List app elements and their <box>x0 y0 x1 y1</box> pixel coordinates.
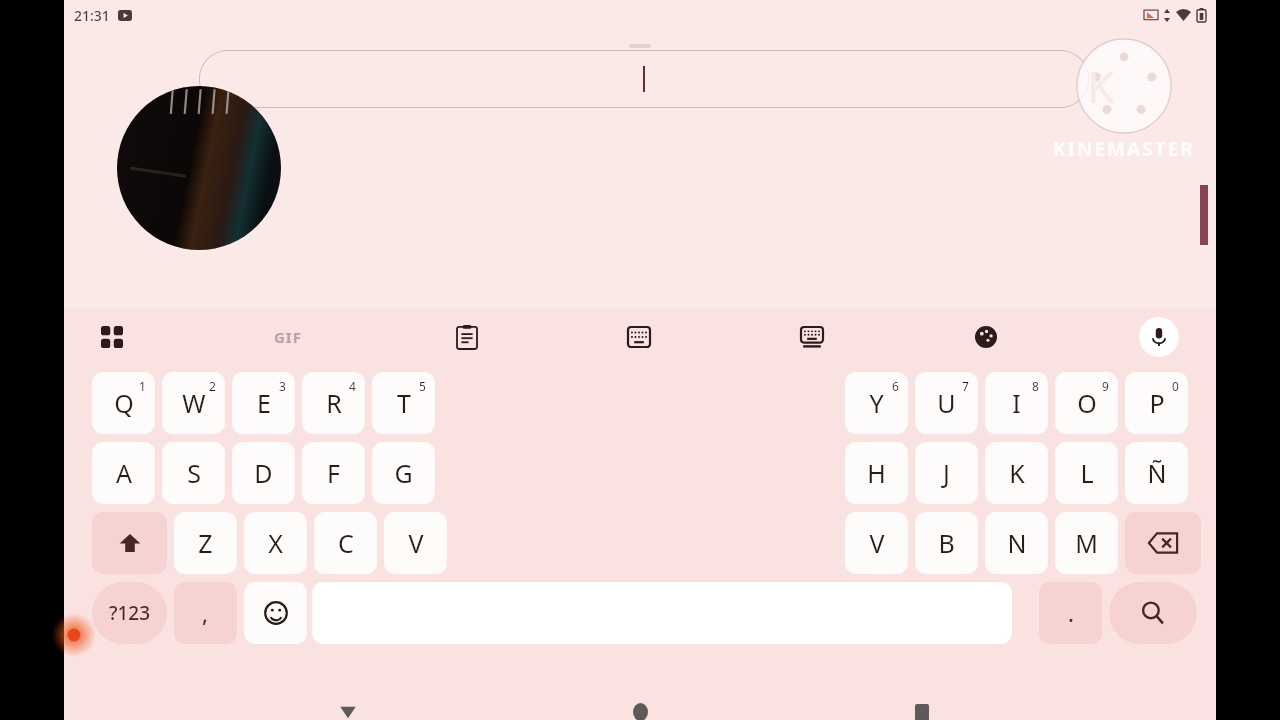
button[interactable]: ?123 <box>92 582 167 644</box>
button[interactable]: Backspace <box>1125 512 1201 574</box>
button[interactable]: R <box>302 372 365 434</box>
button[interactable]: F <box>302 442 365 504</box>
staticText: 6 <box>892 378 899 394</box>
staticText: I <box>1012 386 1021 420</box>
button[interactable]: X <box>244 512 307 574</box>
button[interactable]: I <box>985 372 1048 434</box>
staticText: K <box>1087 56 1115 116</box>
button[interactable]: P <box>1125 372 1188 434</box>
staticText: 0 <box>1172 378 1179 394</box>
button[interactable]: V <box>384 512 447 574</box>
staticText: A <box>116 456 132 490</box>
button[interactable]: Y <box>845 372 908 434</box>
button[interactable]: G <box>372 442 435 504</box>
button[interactable]: E <box>232 372 295 434</box>
button[interactable]: Keyboard settings <box>623 321 655 353</box>
button[interactable]: , <box>174 582 237 644</box>
button[interactable]: B <box>915 512 978 574</box>
staticText: 2 <box>209 378 216 394</box>
button[interactable]: Recent apps <box>904 694 940 720</box>
button[interactable]: Voice input <box>1139 317 1179 357</box>
button[interactable]: Q <box>92 372 155 434</box>
staticText: 5 <box>419 378 426 394</box>
button[interactable]: W <box>162 372 225 434</box>
staticText: L <box>1080 456 1094 490</box>
staticText: Q <box>114 386 134 420</box>
button[interactable]: O <box>1055 372 1118 434</box>
button[interactable]: . <box>1039 582 1102 644</box>
button[interactable]: N <box>985 512 1048 574</box>
staticText: T <box>397 386 411 420</box>
button[interactable]: Ñ <box>1125 442 1188 504</box>
button[interactable]: Back <box>330 694 366 720</box>
staticText: R <box>326 386 342 420</box>
staticText: W <box>182 386 206 420</box>
button[interactable] <box>199 50 1089 108</box>
staticText: H <box>867 456 886 490</box>
staticText: V <box>408 526 424 560</box>
staticText: , <box>202 598 209 628</box>
staticText: Z <box>198 526 213 560</box>
staticText: G <box>394 456 413 490</box>
staticText: D <box>254 456 273 490</box>
staticText: N <box>1007 526 1027 560</box>
button[interactable]: D <box>232 442 295 504</box>
staticText: Y <box>869 386 884 420</box>
staticText: X <box>268 526 283 560</box>
button[interactable]: V <box>845 512 908 574</box>
button[interactable]: Shift <box>92 512 167 574</box>
button[interactable]: GIF <box>264 321 312 353</box>
staticText: 3 <box>279 378 286 394</box>
button[interactable]: Home <box>622 694 658 720</box>
button[interactable]: Theme <box>970 321 1002 353</box>
button[interactable]: K <box>985 442 1048 504</box>
staticText: V <box>869 526 885 560</box>
staticText: S <box>187 456 201 490</box>
staticText: U <box>937 386 956 420</box>
staticText: C <box>338 526 354 560</box>
staticText: 8 <box>1032 378 1039 394</box>
button[interactable]: H <box>845 442 908 504</box>
staticText: 7 <box>962 378 969 394</box>
staticText: M <box>1075 526 1098 560</box>
button[interactable]: S <box>162 442 225 504</box>
button[interactable]: C <box>314 512 377 574</box>
staticText: Ñ <box>1147 456 1167 490</box>
staticText: P <box>1149 386 1165 420</box>
staticText: ?123 <box>109 600 151 626</box>
staticText: F <box>327 456 340 490</box>
button[interactable]: T <box>372 372 435 434</box>
staticText: B <box>938 526 955 560</box>
button[interactable]: Keyboard mode <box>796 321 828 353</box>
staticText: . <box>1068 598 1074 628</box>
button[interactable]: L <box>1055 442 1118 504</box>
staticText: GIF <box>274 327 302 347</box>
button[interactable]: Keyboard menu <box>96 321 128 353</box>
button[interactable]: J <box>915 442 978 504</box>
staticText: 1 <box>139 378 146 394</box>
button[interactable]: Z <box>174 512 237 574</box>
button[interactable] <box>244 582 307 644</box>
staticText: 21:31 <box>74 6 110 25</box>
staticText: 9 <box>1102 378 1109 394</box>
staticText: E <box>257 386 271 420</box>
button[interactable]: A <box>92 442 155 504</box>
staticText: O <box>1077 386 1097 420</box>
staticText: J <box>943 456 950 490</box>
button[interactable]: U <box>915 372 978 434</box>
staticText: 4 <box>349 378 356 394</box>
button[interactable]: Search <box>1109 582 1197 644</box>
button[interactable]: Profile photo <box>117 86 281 250</box>
button[interactable]: Clipboard <box>451 321 483 353</box>
staticText: KINEMASTER <box>1053 136 1195 162</box>
staticText: K <box>1009 456 1025 490</box>
button[interactable]: M <box>1055 512 1118 574</box>
